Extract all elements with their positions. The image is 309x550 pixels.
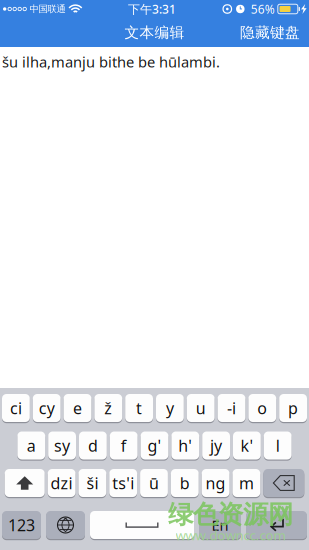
- staticText: šu ilha,manju bithe be hūlambi.: [2, 52, 220, 71]
- staticText: ū: [149, 472, 159, 494]
- button[interactable]: h': [171, 431, 199, 461]
- button[interactable]: dzi: [48, 469, 75, 498]
- button[interactable]: Space: [90, 511, 194, 540]
- staticText: sy: [54, 435, 70, 456]
- staticText: En: [211, 515, 228, 535]
- staticText: t: [136, 397, 142, 419]
- staticText: k': [240, 435, 253, 456]
- staticText: ts'i: [112, 472, 134, 494]
- staticText: dzi: [51, 472, 73, 494]
- button[interactable]: ši: [78, 469, 106, 498]
- staticText: 56%: [251, 1, 275, 17]
- staticText: 123: [8, 514, 35, 536]
- staticText: jy: [210, 435, 222, 456]
- button[interactable]: d: [79, 431, 107, 461]
- button[interactable]: t: [125, 394, 153, 423]
- button[interactable]: ž: [94, 394, 122, 423]
- button[interactable]: sy: [48, 431, 76, 461]
- button[interactable]: f: [110, 431, 138, 461]
- button[interactable]: 123: [2, 511, 41, 540]
- staticText: u: [196, 397, 206, 419]
- button[interactable]: y: [156, 394, 184, 423]
- staticText: 绿色资源网: [168, 499, 293, 530]
- staticText: e: [73, 397, 82, 419]
- staticText: h': [178, 435, 192, 456]
- staticText: ng: [206, 472, 226, 494]
- button[interactable]: p: [279, 394, 307, 423]
- staticText: b: [180, 472, 190, 494]
- staticText: www.downcc.com: [175, 526, 285, 544]
- staticText: ši: [86, 472, 98, 494]
- button[interactable]: Delete: [263, 469, 304, 498]
- staticText: cy: [39, 397, 55, 419]
- staticText: ci: [10, 397, 22, 419]
- staticText: g': [147, 435, 161, 456]
- button[interactable]: Shift: [5, 469, 45, 498]
- button[interactable]: e: [64, 394, 91, 423]
- staticText: f: [121, 435, 127, 456]
- button[interactable]: g': [141, 431, 168, 461]
- button[interactable]: o: [248, 394, 276, 423]
- button[interactable]: m: [232, 469, 260, 498]
- staticText: a: [27, 435, 36, 456]
- button[interactable]: Next keyboard: [46, 511, 85, 540]
- staticText: l: [276, 435, 280, 456]
- staticText: p: [288, 397, 298, 419]
- button[interactable]: l: [264, 431, 292, 461]
- button[interactable]: a: [17, 431, 45, 461]
- button[interactable]: ts'i: [109, 469, 137, 498]
- staticText: 下午3:31: [128, 1, 176, 17]
- staticText: 隐藏键盘: [240, 23, 300, 41]
- staticText: ž: [104, 397, 112, 419]
- staticText: y: [166, 397, 174, 419]
- button[interactable]: u: [187, 394, 215, 423]
- button[interactable]: En: [199, 511, 241, 540]
- staticText: -i: [227, 397, 236, 419]
- staticText: o: [257, 397, 267, 419]
- staticText: 中国联通: [29, 3, 65, 15]
- button[interactable]: ci: [2, 394, 30, 423]
- button[interactable]: ng: [202, 469, 229, 498]
- button[interactable]: ū: [140, 469, 168, 498]
- button[interactable]: cy: [33, 394, 61, 423]
- staticText: 文本编辑: [124, 23, 184, 41]
- button[interactable]: Return: [246, 511, 307, 540]
- staticText: d: [88, 435, 98, 456]
- button[interactable]: 隐藏键盘: [231, 18, 309, 47]
- button[interactable]: -i: [218, 394, 245, 423]
- button[interactable]: k': [233, 431, 261, 461]
- button[interactable]: b: [171, 469, 199, 498]
- button[interactable]: jy: [202, 431, 230, 461]
- staticText: m: [239, 472, 254, 494]
